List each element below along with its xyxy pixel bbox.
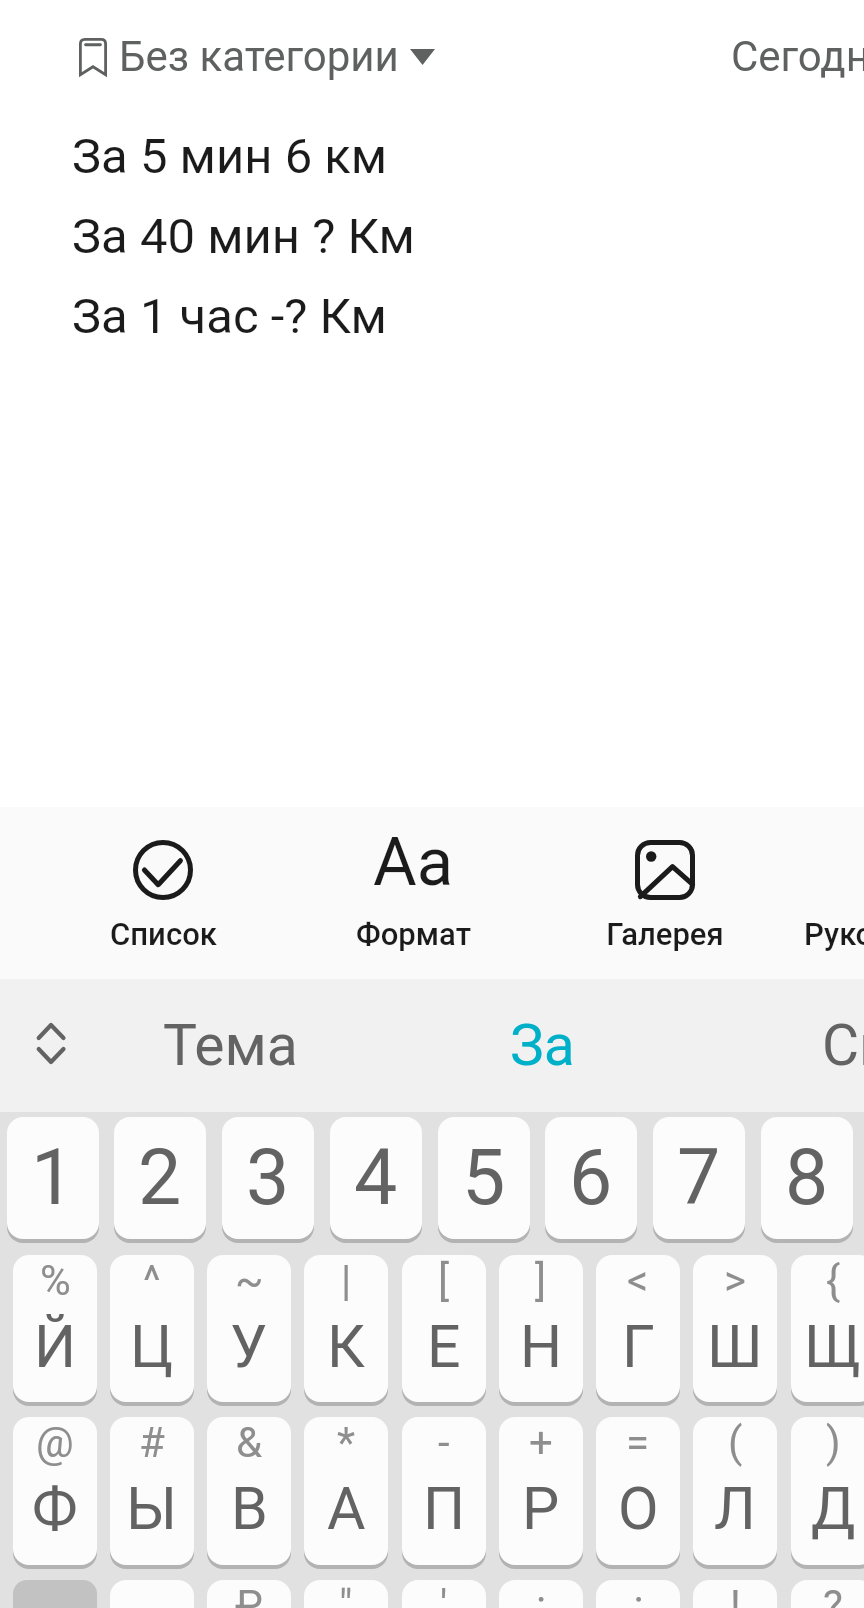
- staticText: !: [730, 1581, 741, 1608]
- staticText: 6: [569, 1133, 613, 1223]
- button[interactable]: :: [499, 1580, 583, 1608]
- button[interactable]: >: [693, 1255, 777, 1402]
- staticText: 5: [462, 1133, 506, 1223]
- button[interactable]: Shift: [13, 1580, 97, 1608]
- staticText: За 5 мин 6 км: [72, 128, 388, 185]
- staticText: 1: [31, 1133, 75, 1223]
- staticText: В: [231, 1474, 268, 1543]
- button[interactable]: -: [402, 1417, 486, 1565]
- button[interactable]: <: [596, 1255, 680, 1402]
- staticText: А: [327, 1474, 366, 1543]
- staticText: Р: [522, 1474, 560, 1543]
- button[interactable]: ]: [499, 1255, 583, 1402]
- staticText: 4: [354, 1133, 398, 1223]
- button[interactable]: ": [304, 1580, 388, 1608]
- staticText: Рукописный: [804, 916, 864, 952]
- button[interactable]: ;: [596, 1580, 680, 1608]
- button[interactable]: +: [499, 1417, 583, 1565]
- staticText: :: [536, 1581, 547, 1608]
- staticText: 8: [785, 1133, 829, 1223]
- button[interactable]: ~: [207, 1255, 291, 1402]
- staticText: Тема: [163, 1012, 298, 1079]
- staticText: |: [341, 1256, 352, 1300]
- button[interactable]: {: [791, 1255, 864, 1402]
- staticText: Г: [622, 1312, 655, 1381]
- button[interactable]: @: [13, 1417, 97, 1565]
- button[interactable]: *: [304, 1417, 388, 1565]
- button[interactable]: Сколько: [785, 979, 864, 1112]
- button[interactable]: ): [791, 1417, 864, 1565]
- button[interactable]: Expand suggestions: [10, 979, 92, 1112]
- staticText: Щ: [804, 1312, 862, 1381]
- staticText: >: [724, 1256, 746, 1300]
- staticText: ~: [235, 1256, 264, 1300]
- button[interactable]: 1: [7, 1117, 99, 1239]
- staticText: ;: [634, 1581, 643, 1608]
- button[interactable]: &: [207, 1417, 291, 1565]
- button[interactable]: |: [304, 1255, 388, 1402]
- staticText: Aa: [373, 823, 454, 887]
- staticText: Д: [811, 1474, 856, 1543]
- staticText: Список: [110, 916, 217, 952]
- staticText: ]: [535, 1256, 547, 1300]
- button[interactable]: 8: [761, 1117, 853, 1239]
- button[interactable]: (: [693, 1417, 777, 1565]
- staticText: Формат: [356, 916, 471, 952]
- staticText: Сколько: [822, 1012, 864, 1079]
- button[interactable]: ₽: [207, 1580, 291, 1608]
- button[interactable]: 2: [114, 1117, 206, 1239]
- button[interactable]: 6: [545, 1117, 637, 1239]
- button[interactable]: !: [693, 1580, 777, 1608]
- staticText: О: [618, 1474, 659, 1543]
- button[interactable]: #: [110, 1417, 194, 1565]
- staticText: ^: [143, 1256, 161, 1300]
- button[interactable]: ?: [791, 1580, 864, 1608]
- staticText: -: [438, 1418, 450, 1462]
- button[interactable]: Формат: [288, 807, 538, 979]
- staticText: Й: [34, 1312, 77, 1381]
- button[interactable]: 5: [438, 1117, 530, 1239]
- staticText: ': [440, 1581, 448, 1608]
- button[interactable]: 7: [653, 1117, 745, 1239]
- staticText: {: [826, 1256, 841, 1300]
- button[interactable]: ': [402, 1580, 486, 1608]
- staticText: К: [327, 1312, 365, 1381]
- staticText: Л: [714, 1474, 756, 1543]
- staticText: Без категории: [119, 32, 399, 81]
- staticText: Н: [520, 1312, 563, 1381]
- button[interactable]: [: [402, 1255, 486, 1402]
- staticText: За 40 мин ? Км: [72, 208, 415, 265]
- staticText: Е: [427, 1312, 461, 1381]
- button[interactable]: Я: [110, 1580, 194, 1608]
- button[interactable]: ^: [110, 1255, 194, 1402]
- button[interactable]: За: [392, 979, 692, 1112]
- button[interactable]: Без категории: [79, 32, 435, 81]
- staticText: Сегодня: [731, 32, 864, 81]
- button[interactable]: Галерея: [540, 807, 790, 979]
- button[interactable]: Сегодня: [731, 32, 864, 81]
- staticText: Ш: [707, 1312, 763, 1381]
- staticText: Ф: [32, 1474, 78, 1543]
- button[interactable]: %: [13, 1255, 97, 1402]
- staticText: ?: [823, 1581, 843, 1608]
- staticText: ": [339, 1581, 353, 1608]
- staticText: +: [529, 1418, 553, 1462]
- staticText: [: [438, 1256, 450, 1300]
- staticText: *: [337, 1418, 356, 1462]
- button[interactable]: Рукописный ввод: [790, 807, 864, 979]
- staticText: 2: [138, 1133, 182, 1223]
- button[interactable]: 4: [330, 1117, 422, 1239]
- staticText: <: [627, 1256, 649, 1300]
- staticText: Ц: [130, 1312, 174, 1381]
- button[interactable]: Тема: [80, 979, 380, 1112]
- staticText: #: [139, 1418, 165, 1462]
- button[interactable]: =: [596, 1417, 680, 1565]
- staticText: @: [36, 1418, 74, 1462]
- button[interactable]: Список: [38, 807, 288, 979]
- staticText: &: [236, 1418, 263, 1462]
- button[interactable]: 3: [222, 1117, 314, 1239]
- staticText: Ы: [126, 1474, 178, 1543]
- staticText: ₽: [235, 1581, 263, 1608]
- staticText: %: [40, 1256, 71, 1300]
- staticText: За: [510, 1012, 575, 1079]
